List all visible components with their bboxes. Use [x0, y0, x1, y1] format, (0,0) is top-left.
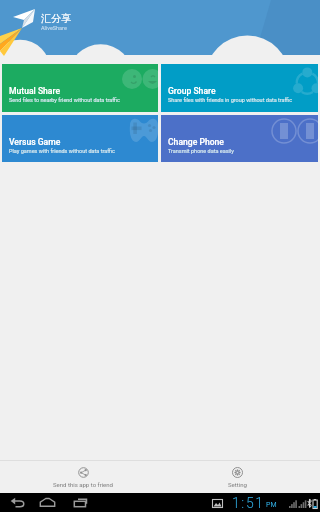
staticText: Change Phone [168, 137, 224, 147]
staticText: PM [266, 501, 277, 509]
staticText: Mutual Share [9, 86, 61, 96]
staticText: Send this app to friend [53, 481, 114, 488]
staticText: Play games with friends without data tra… [9, 148, 115, 154]
staticText: Send files to nearby friend without data… [9, 97, 120, 103]
staticText: Versus Game [9, 137, 61, 147]
staticText: Group Share [168, 86, 216, 96]
button[interactable]: Group Share [161, 64, 318, 112]
button[interactable]: Recent apps [71, 493, 92, 512]
staticText: 汇分享 [41, 12, 71, 25]
button[interactable]: Setting [160, 461, 314, 493]
button[interactable]: Versus Game [2, 115, 158, 162]
staticText: AliveShare [41, 25, 67, 31]
staticText: Setting [228, 481, 247, 488]
button[interactable]: Home [37, 493, 58, 512]
button[interactable]: Send this app to friend [6, 461, 160, 493]
staticText: Transmit phone data easily [168, 148, 234, 154]
button[interactable]: Change Phone [161, 115, 318, 162]
staticText: 1:51 [232, 495, 265, 511]
button[interactable]: Back [7, 493, 28, 512]
staticText: Share files with friends in group withou… [168, 97, 293, 103]
button[interactable]: Mutual Share [2, 64, 158, 112]
